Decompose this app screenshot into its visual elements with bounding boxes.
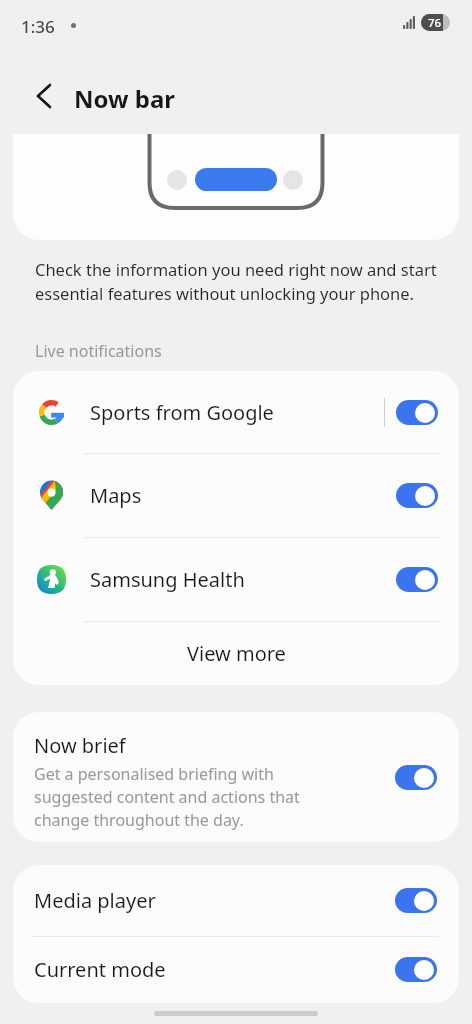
button[interactable]: Toggle on — [395, 957, 437, 982]
staticText: Get a personalised briefing with suggest… — [34, 763, 314, 831]
staticText: Current mode — [34, 956, 395, 983]
staticText: Now brief — [34, 732, 126, 759]
staticText: Live notifications — [35, 340, 162, 362]
button[interactable]: Toggle on — [396, 400, 438, 425]
staticText: Media player — [34, 887, 395, 914]
staticText: 1:36 — [21, 15, 55, 38]
staticText: Maps — [90, 482, 396, 509]
button[interactable]: Now brief — [13, 712, 459, 842]
button[interactable]: Toggle on — [395, 888, 437, 913]
staticText: Sports from Google — [90, 399, 384, 426]
button[interactable]: Toggle on — [395, 765, 437, 790]
button[interactable]: Back — [24, 76, 64, 116]
button[interactable]: Sports from Google — [13, 371, 459, 453]
staticText: Check the information you need right now… — [35, 258, 445, 305]
staticText: Samsung Health — [90, 566, 396, 593]
button[interactable]: Toggle on — [396, 567, 438, 592]
button[interactable]: Toggle on — [396, 483, 438, 508]
staticText: View more — [187, 640, 286, 667]
button[interactable]: Media player — [13, 865, 459, 936]
button[interactable]: View more — [13, 622, 459, 685]
button[interactable]: Samsung Health — [13, 537, 459, 621]
button[interactable]: Maps — [13, 453, 459, 537]
staticText: Now bar — [74, 82, 176, 115]
button[interactable]: Current mode — [13, 936, 459, 1003]
staticText: 76 — [428, 15, 442, 31]
